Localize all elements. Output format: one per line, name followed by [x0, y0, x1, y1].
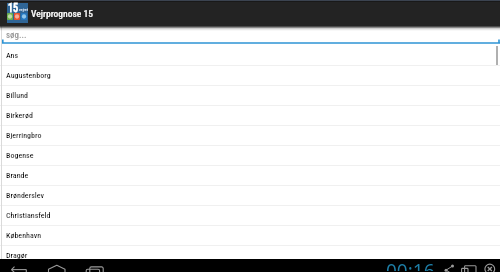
button[interactable]: København [0, 226, 500, 246]
button[interactable]: Birkerød [0, 106, 500, 126]
staticText: Brønderslev [6, 191, 45, 200]
staticText: 00:16 [386, 258, 435, 271]
staticText: Ans [6, 51, 19, 60]
staticText: søg... [6, 30, 27, 41]
button[interactable]: Recent apps [82, 259, 108, 272]
staticText: Christiansfeld [6, 211, 51, 220]
button[interactable]: Brande [0, 166, 500, 186]
button[interactable]: Christiansfeld [0, 206, 500, 226]
staticText: Billund [6, 91, 29, 100]
button[interactable]: Bogense [0, 146, 500, 166]
button[interactable]: Home [44, 259, 68, 272]
button[interactable]: Brønderslev [0, 186, 500, 206]
button[interactable]: Screenshot [461, 259, 479, 272]
staticText: Bjerringbro [6, 131, 42, 140]
button[interactable]: Dragør [0, 246, 500, 266]
button[interactable]: Bjerringbro [0, 126, 500, 146]
staticText: København [6, 231, 42, 240]
staticText: 15 [8, 0, 18, 15]
staticText: Birkerød [6, 111, 33, 120]
staticText: vejret [19, 7, 28, 12]
staticText: Bogense [6, 151, 34, 160]
button[interactable]: Ans [0, 46, 500, 66]
button[interactable]: Billund [0, 86, 500, 106]
button[interactable]: Augustenborg [0, 66, 500, 86]
staticText: Vejrprognose 15 [31, 8, 93, 19]
button[interactable]: Share [441, 259, 458, 272]
staticText: Brande [6, 171, 29, 180]
button[interactable]: Back [4, 259, 32, 272]
button[interactable]: Close [481, 259, 498, 272]
staticText: Dragør [6, 251, 28, 260]
staticText: Augustenborg [6, 71, 51, 80]
